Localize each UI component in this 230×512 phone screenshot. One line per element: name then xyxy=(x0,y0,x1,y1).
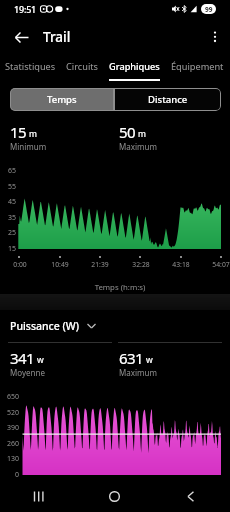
button[interactable]: Puissance (W) xyxy=(10,310,230,342)
staticText: 50 xyxy=(119,122,135,142)
staticText: 15 xyxy=(0,244,16,254)
staticText: Puissance (W) xyxy=(10,319,79,333)
button[interactable]: Équipement xyxy=(164,56,230,82)
staticText: 0 xyxy=(0,470,19,480)
staticText: 130 xyxy=(0,454,19,464)
staticText: 35 xyxy=(0,213,16,223)
button[interactable]: Graphiques xyxy=(104,56,164,82)
button[interactable]: More options xyxy=(200,22,230,52)
staticText: Graphiques xyxy=(109,60,160,73)
staticText: 341 xyxy=(10,348,34,368)
staticText: Trail xyxy=(43,28,71,46)
staticText: 19:51 xyxy=(14,3,37,15)
staticText: 260 xyxy=(0,439,19,449)
button[interactable]: Temps xyxy=(10,88,114,111)
staticText: Maximum xyxy=(119,141,157,152)
staticText: w xyxy=(146,354,153,366)
button[interactable]: Home xyxy=(76,480,153,512)
staticText: 25 xyxy=(0,228,16,238)
staticText: Circuits xyxy=(66,60,98,73)
staticText: Temps xyxy=(47,93,77,106)
staticText: 0:00 xyxy=(4,260,36,269)
staticText: 43:18 xyxy=(165,260,197,269)
button[interactable]: Circuits xyxy=(60,56,104,82)
staticText: 55 xyxy=(0,182,16,192)
button[interactable]: Back xyxy=(153,480,230,512)
staticText: m xyxy=(29,128,37,140)
staticText: Statistiques xyxy=(5,60,56,73)
staticText: Temps (h:m:s) xyxy=(70,282,170,293)
staticText: Moyenne xyxy=(10,367,45,378)
staticText: Maximum xyxy=(119,367,157,378)
staticText: 520 xyxy=(0,408,19,418)
staticText: w xyxy=(37,354,44,366)
staticText: 631 xyxy=(119,348,143,368)
staticText: Distance xyxy=(148,93,188,106)
staticText: m xyxy=(138,128,146,140)
staticText: 21:39 xyxy=(84,260,116,269)
staticText: 650 xyxy=(0,392,19,402)
button[interactable]: Statistiques xyxy=(0,56,60,82)
staticText: 45 xyxy=(0,197,16,207)
button[interactable]: Back xyxy=(4,20,38,54)
staticText: Équipement xyxy=(171,60,224,73)
staticText: 65 xyxy=(0,166,16,176)
staticText: 390 xyxy=(0,423,19,433)
staticText: 10:49 xyxy=(44,260,76,269)
staticText: 15 xyxy=(10,122,26,142)
staticText: Minimum xyxy=(10,141,47,152)
staticText: 54:07 xyxy=(205,260,230,269)
button[interactable]: Recent apps xyxy=(0,480,76,512)
staticText: 99 xyxy=(205,5,213,14)
button[interactable]: Distance xyxy=(114,88,221,111)
staticText: 32:28 xyxy=(125,260,157,269)
